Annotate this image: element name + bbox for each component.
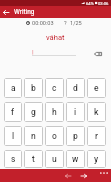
staticText: váhat <box>46 33 65 42</box>
staticText: f <box>11 107 15 117</box>
staticText: g <box>31 107 36 117</box>
button[interactable]: y <box>87 150 106 168</box>
staticText: u <box>52 154 57 164</box>
button[interactable]: r <box>87 126 106 146</box>
staticText: h <box>52 107 57 117</box>
staticText: i <box>74 107 77 117</box>
staticText: n <box>31 131 36 141</box>
button[interactable]: Next <box>78 169 90 182</box>
button[interactable]: c <box>45 78 64 98</box>
staticText: a <box>11 83 16 93</box>
button[interactable]: f <box>4 102 22 122</box>
button[interactable]: Backspace <box>91 48 104 59</box>
button[interactable]: o <box>45 126 64 146</box>
staticText: ? <box>64 20 67 27</box>
staticText: Writing <box>14 8 35 16</box>
button[interactable]: d <box>66 78 85 98</box>
button[interactable]: Back <box>0 6 12 18</box>
button[interactable]: n <box>24 126 43 146</box>
button[interactable]: u <box>45 150 64 168</box>
button[interactable]: t <box>24 150 43 168</box>
staticText: 64% <box>86 1 94 6</box>
button[interactable]: s <box>4 150 22 168</box>
staticText: b <box>31 83 36 93</box>
staticText: k <box>94 107 99 117</box>
staticText: c <box>52 83 57 93</box>
button[interactable]: k <box>87 102 106 122</box>
button[interactable]: p <box>66 126 85 146</box>
staticText: 1/25 <box>70 20 82 27</box>
staticText: p <box>73 131 78 141</box>
staticText: w <box>72 154 79 164</box>
button[interactable]: i <box>66 102 85 122</box>
button[interactable]: g <box>24 102 43 122</box>
staticText: e <box>94 83 99 93</box>
staticText: s <box>11 154 16 164</box>
button[interactable]: More options <box>97 169 110 176</box>
button[interactable]: Previous <box>62 169 74 182</box>
staticText: 00:00:03 <box>32 20 54 27</box>
button[interactable]: e <box>87 78 106 98</box>
staticText: t <box>32 154 35 164</box>
button[interactable]: a <box>4 78 22 98</box>
button[interactable]: w <box>66 150 85 168</box>
button[interactable]: l <box>4 126 22 146</box>
staticText: l <box>12 131 15 141</box>
staticText: d <box>73 83 78 93</box>
staticText: o <box>52 131 57 141</box>
button[interactable]: h <box>45 102 64 122</box>
button[interactable]: b <box>24 78 43 98</box>
staticText: r <box>95 131 99 141</box>
staticText: y <box>94 154 99 164</box>
staticText: 03:06 <box>98 1 109 6</box>
